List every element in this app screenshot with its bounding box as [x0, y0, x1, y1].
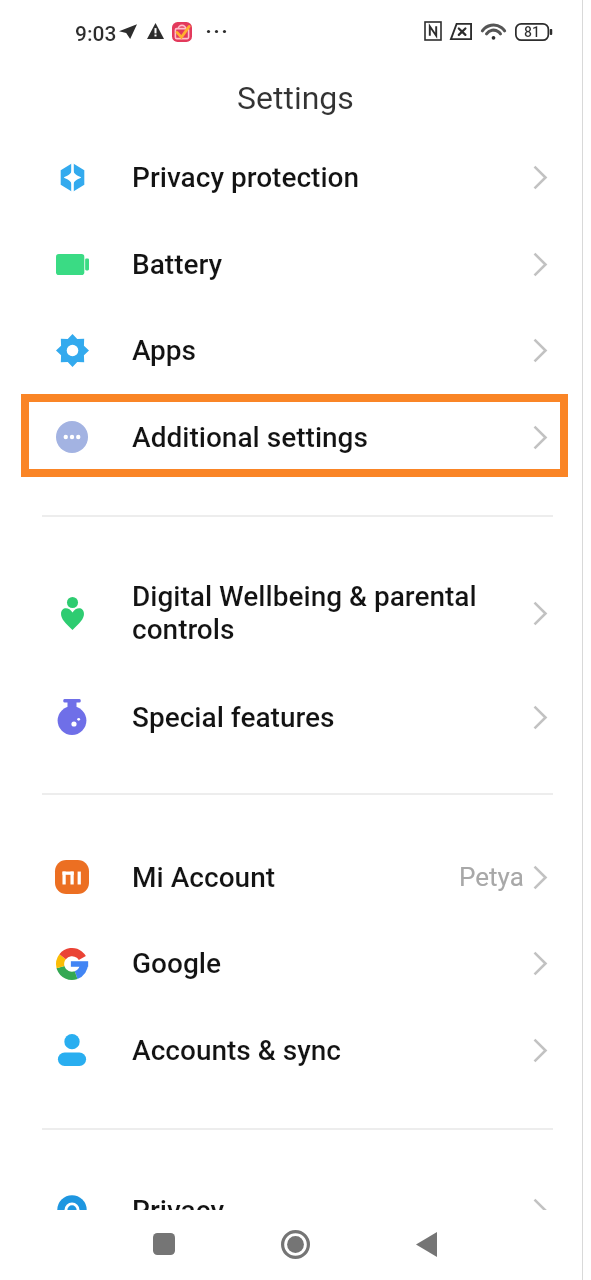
- button[interactable]: Battery: [0, 221, 591, 307]
- button[interactable]: Home: [273, 1222, 317, 1266]
- staticText: Digital Wellbeing & parental controls: [132, 580, 519, 646]
- staticText: Mi Account: [132, 861, 449, 894]
- button[interactable]: Mi Account: [0, 834, 591, 920]
- staticText: Petya: [459, 862, 524, 892]
- button[interactable]: Back: [404, 1222, 448, 1266]
- staticText: 81: [524, 24, 540, 40]
- staticText: Additional settings: [132, 421, 519, 454]
- staticText: Privacy: [132, 1194, 519, 1227]
- button[interactable]: Privacy: [0, 1167, 591, 1253]
- button[interactable]: Privacy protection: [0, 134, 591, 221]
- button[interactable]: Digital Wellbeing & parental controls: [0, 563, 591, 663]
- staticText: Privacy protection: [132, 161, 519, 194]
- staticText: Settings: [237, 79, 354, 117]
- button[interactable]: Apps: [0, 307, 591, 394]
- button[interactable]: Additional settings: [0, 394, 591, 480]
- staticText: 9:03: [75, 22, 117, 47]
- staticText: Battery: [132, 248, 519, 281]
- staticText: Special features: [132, 701, 519, 734]
- staticText: Google: [132, 947, 519, 980]
- button[interactable]: [21, 394, 568, 477]
- button[interactable]: Accounts & sync: [0, 1007, 591, 1093]
- staticText: Apps: [132, 334, 519, 367]
- button[interactable]: Google: [0, 920, 591, 1007]
- staticText: Accounts & sync: [132, 1034, 519, 1067]
- button[interactable]: Recents: [142, 1222, 186, 1266]
- button[interactable]: Special features: [0, 674, 591, 760]
